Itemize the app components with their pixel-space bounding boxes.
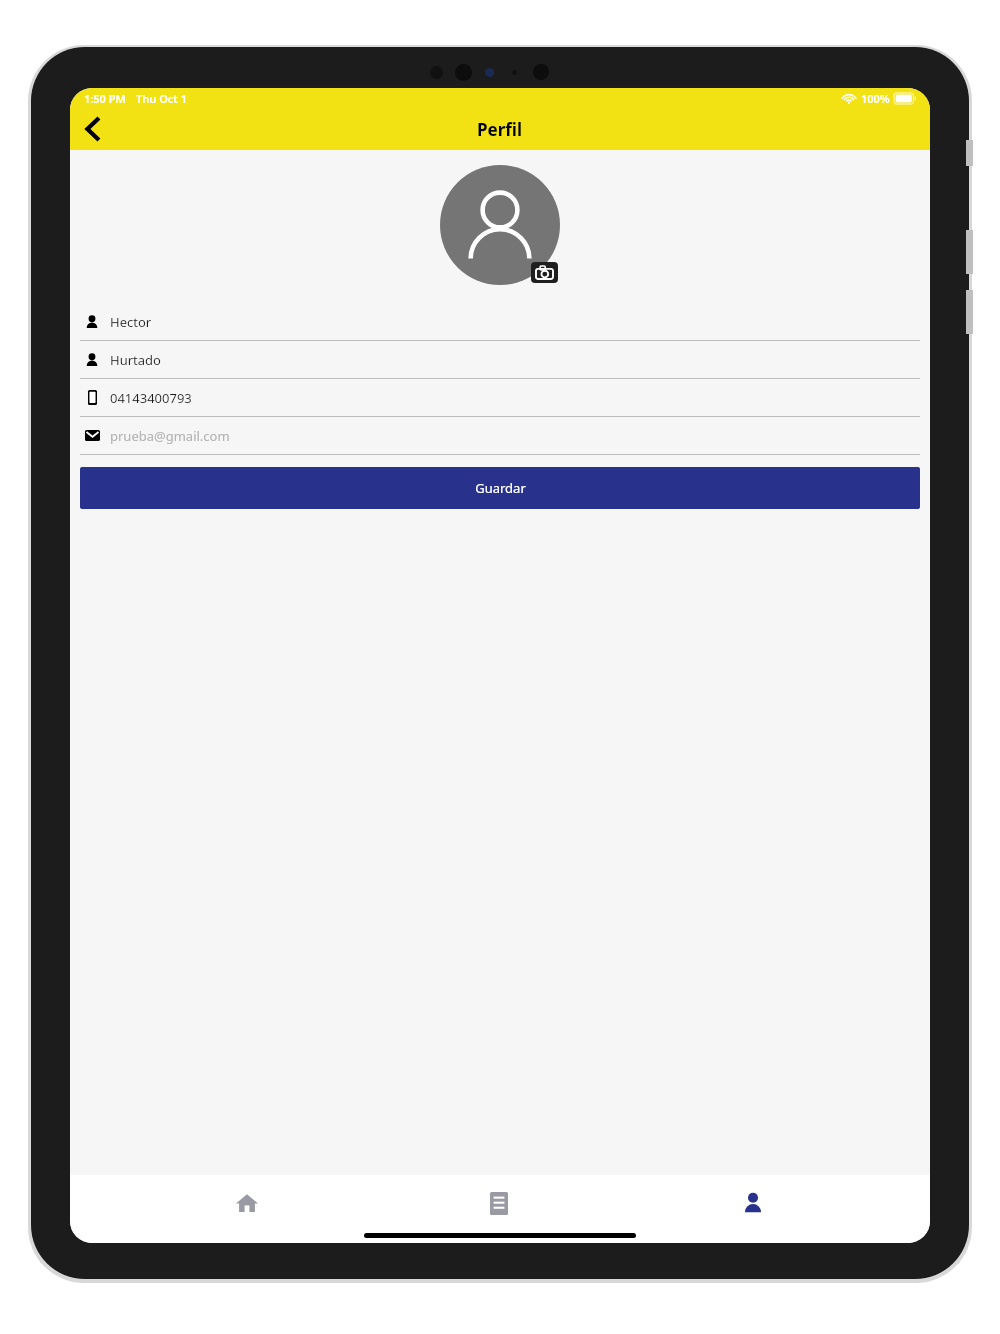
button[interactable]: Hurtado [80, 341, 920, 379]
staticText: prueba@gmail.com [110, 427, 230, 445]
staticText: Thu Oct 1 [136, 91, 187, 106]
button[interactable]: Change profile photo [440, 165, 560, 285]
button[interactable]: Take photo [531, 262, 558, 283]
button[interactable]: Hector [80, 303, 920, 341]
button[interactable]: Profile [680, 1180, 825, 1226]
staticText: Perfil [477, 118, 523, 141]
button[interactable]: Back [72, 108, 114, 150]
button[interactable]: 04143400793 [80, 379, 920, 417]
button[interactable]: prueba@gmail.com [80, 417, 920, 455]
staticText: 04143400793 [110, 389, 192, 407]
button[interactable]: Home [172, 1175, 322, 1231]
button[interactable]: Documents [424, 1175, 574, 1231]
button[interactable]: Guardar [80, 467, 920, 509]
staticText: Hurtado [110, 351, 161, 369]
staticText: Hector [110, 313, 152, 331]
staticText: Guardar [475, 479, 526, 497]
staticText: 1:50 PM [84, 91, 126, 106]
staticText: 100% [861, 91, 890, 106]
